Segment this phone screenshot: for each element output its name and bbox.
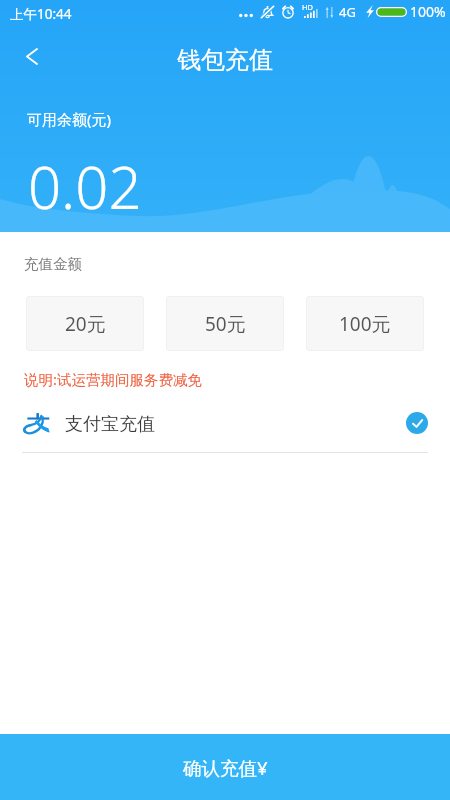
staticText: 说明:试运营期间服务费减免 bbox=[24, 369, 202, 389]
staticText: 可用余额(元) bbox=[27, 109, 112, 129]
staticText: 100元 bbox=[339, 311, 391, 337]
staticText: 支付宝充值 bbox=[65, 413, 155, 436]
staticText: 充值金额 bbox=[24, 255, 82, 273]
staticText: 确认充值¥ bbox=[183, 755, 268, 780]
staticText: HD bbox=[302, 2, 314, 12]
button[interactable]: 100元 bbox=[306, 296, 424, 351]
staticText: 上午10:44 bbox=[10, 5, 72, 23]
staticText: 4G bbox=[339, 3, 356, 21]
staticText: 50元 bbox=[205, 311, 246, 337]
button[interactable]: 确认充值¥ bbox=[0, 734, 450, 800]
staticText: 100% bbox=[410, 2, 446, 21]
staticText: 20元 bbox=[65, 311, 106, 337]
button[interactable]: 支付宝充值 bbox=[22, 397, 428, 452]
staticText: 钱包充值 bbox=[177, 45, 273, 75]
staticText: 0.02 bbox=[28, 147, 142, 226]
button[interactable]: 50元 bbox=[166, 296, 284, 351]
button[interactable]: 20元 bbox=[26, 296, 144, 351]
button[interactable]: Selected payment method bbox=[406, 412, 428, 434]
button[interactable]: Back bbox=[0, 33, 52, 85]
